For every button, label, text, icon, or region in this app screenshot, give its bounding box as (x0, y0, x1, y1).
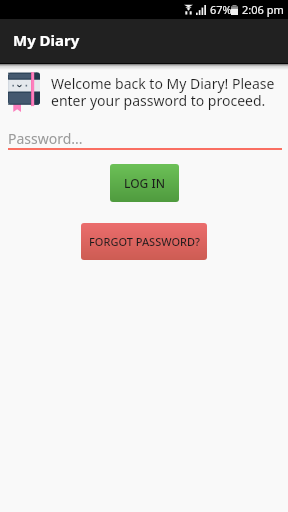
staticText: 2:06 pm (242, 2, 284, 17)
other: Signal strength (196, 5, 206, 15)
staticText: Welcome back to My Diary! Please enter y… (51, 74, 285, 110)
staticText: My Diary (13, 30, 80, 50)
button[interactable]: Password... (0, 126, 288, 150)
staticText: LOG IN (124, 175, 165, 191)
staticText: FORGOT PASSWORD? (89, 234, 200, 249)
button[interactable]: FORGOT PASSWORD? (81, 223, 207, 260)
button[interactable]: LOG IN (110, 164, 179, 202)
staticText: Password... (8, 129, 83, 148)
other: Diary (7, 71, 41, 113)
staticText: 67% (210, 2, 232, 17)
other: Battery 67 percent (231, 5, 238, 15)
other: Wi-Fi (184, 4, 193, 15)
